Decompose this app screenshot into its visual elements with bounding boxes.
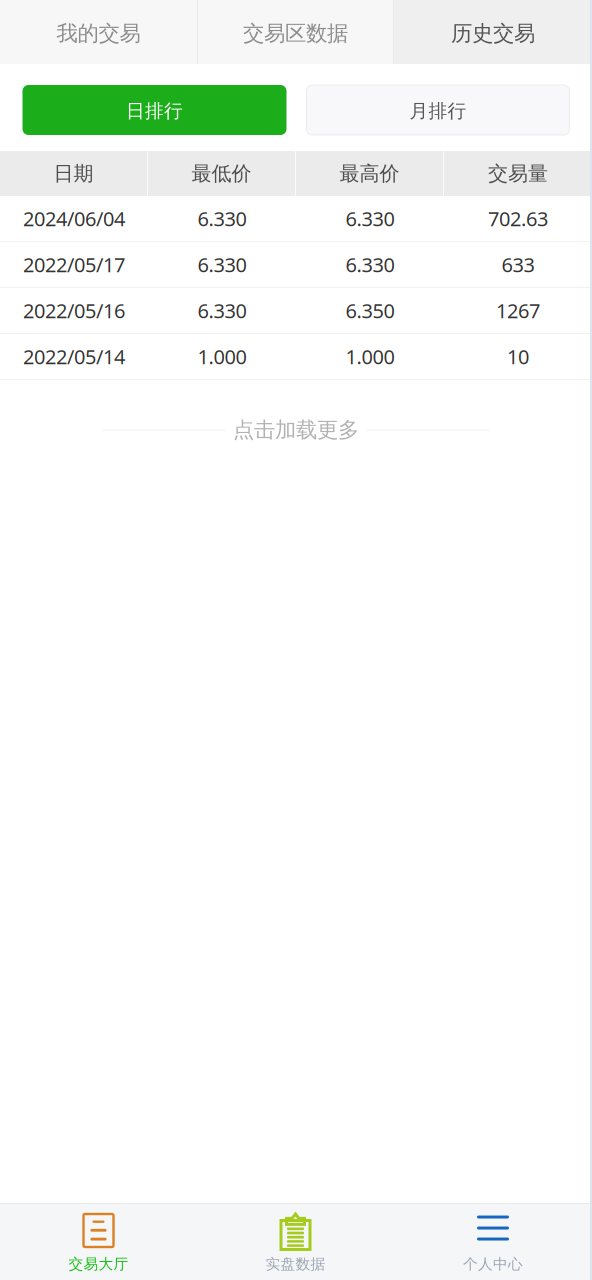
staticText: 交易大厅 [68, 1255, 128, 1273]
staticText: 6.330 [197, 251, 246, 278]
button[interactable]: 交易大厅 [0, 1204, 197, 1280]
button[interactable]: 我的交易 [0, 0, 197, 64]
staticText: 6.330 [197, 297, 246, 324]
button[interactable]: 月排行 [306, 85, 569, 135]
staticText: 633 [501, 251, 534, 278]
staticText: 1.000 [345, 343, 394, 370]
staticText: 个人中心 [463, 1255, 523, 1273]
staticText: 最高价 [339, 161, 399, 186]
staticText: 1267 [496, 297, 540, 324]
staticText: 6.350 [345, 297, 394, 324]
staticText: 日期 [53, 161, 93, 186]
staticText: 历史交易 [451, 20, 535, 47]
staticText: 6.330 [345, 205, 394, 232]
staticText: 我的交易 [56, 20, 140, 47]
button[interactable]: 点击加载更多 [0, 405, 592, 455]
staticText: 1.000 [197, 343, 246, 370]
staticText: 6.330 [197, 205, 246, 232]
button[interactable]: 历史交易 [394, 0, 592, 64]
staticText: 最低价 [191, 161, 251, 186]
staticText: 月排行 [409, 99, 466, 122]
button[interactable]: 个人中心 [394, 1204, 592, 1280]
staticText: 日排行 [126, 99, 183, 122]
staticText: 2022/05/14 [23, 343, 125, 370]
staticText: 10 [507, 343, 529, 370]
staticText: 交易区数据 [243, 20, 348, 47]
staticText: 6.330 [345, 251, 394, 278]
staticText: 702.63 [488, 205, 548, 232]
staticText: 2022/05/17 [23, 251, 125, 278]
staticText: 2022/05/16 [23, 297, 125, 324]
staticText: 点击加载更多 [233, 417, 359, 443]
staticText: 交易量 [488, 161, 548, 186]
button[interactable]: 实盘数据 [197, 1204, 394, 1280]
button[interactable]: 交易区数据 [198, 0, 393, 64]
staticText: 2024/06/04 [23, 205, 125, 232]
button[interactable]: 日排行 [22, 85, 286, 135]
staticText: 实盘数据 [265, 1255, 325, 1273]
